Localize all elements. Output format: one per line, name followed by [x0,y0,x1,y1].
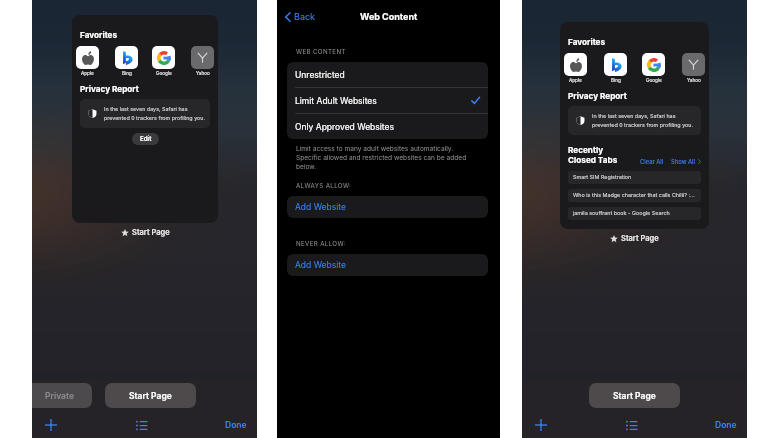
staticText: Favorites [568,37,606,47]
staticText: jamila souffrant book - Google Search [573,210,670,217]
button[interactable]: Limit Adult Websites [287,88,488,113]
staticText: Apple [81,71,94,77]
button[interactable]: Google [642,53,665,84]
button[interactable]: Smart SIM Registration [568,171,701,184]
staticText: Favorites [80,30,118,40]
staticText: Recently Closed Tabs [568,145,618,165]
staticText: Add Website [295,202,346,212]
staticText: In the last seven days, Safari has preve… [592,113,701,128]
button[interactable]: Favorites [560,22,709,229]
staticText: Bing [122,71,132,77]
staticText: Back [294,11,316,22]
button[interactable]: Back [285,11,316,22]
staticText: NEVER ALLOW: [296,240,346,248]
staticText: Limit access to many adult websites auto… [296,145,470,170]
staticText: ALWAYS ALLOW: [296,182,352,190]
button[interactable]: Unrestricted [287,62,488,87]
button[interactable]: Tab Overview [130,414,152,436]
staticText: Only Approved Websites [295,122,395,132]
button[interactable]: Who is this Madge character that calls C… [568,189,701,202]
button[interactable]: New Tab [40,414,62,436]
button[interactable]: Clear All [640,158,664,165]
button[interactable]: Bing [115,46,138,77]
button[interactable]: Tab Overview [620,414,642,436]
button[interactable]: Start Page [105,383,196,408]
staticText: Start Page [132,228,170,237]
staticText: In the last seven days, Safari has preve… [104,106,210,121]
button[interactable]: New Tab [530,414,552,436]
staticText: Private [45,391,74,401]
button[interactable]: Done [225,420,247,430]
staticText: Privacy Report [568,91,627,101]
staticText: Add Website [295,260,346,270]
button[interactable]: Done [715,420,737,430]
staticText: Done [715,420,737,430]
button[interactable]: Edit [132,133,159,145]
staticText: Yahoo [687,78,701,84]
staticText: Web Content [360,11,418,22]
staticText: Bing [611,78,621,84]
button[interactable]: Only Approved Websites [287,114,488,139]
staticText: Clear All [640,158,664,165]
button[interactable]: In the last seven days, Safari has preve… [568,106,701,135]
button[interactable]: Start Page [121,228,170,237]
button[interactable]: Yahoo [682,53,705,84]
button[interactable]: Yahoo [191,46,214,77]
button[interactable]: Bing [604,53,627,84]
staticText: WEB CONTENT [296,48,346,56]
staticText: Start Page [621,234,659,243]
button[interactable]: Favorites [72,15,218,223]
staticText: Edit [140,135,152,143]
staticText: Limit Adult Websites [295,96,377,106]
staticText: Done [225,420,247,430]
button[interactable]: Start Page [610,234,659,243]
button[interactable]: Add Website [287,254,488,276]
button[interactable]: Apple [564,53,587,84]
staticText: Show All [671,158,696,165]
staticText: Privacy Report [80,84,139,94]
button[interactable]: Add Website [287,196,488,218]
staticText: Yahoo [196,71,210,77]
staticText: Apple [569,78,582,84]
staticText: Google [646,78,662,84]
staticText: Who is this Madge character that calls C… [573,192,696,199]
button[interactable]: In the last seven days, Safari has preve… [80,99,210,128]
staticText: Smart SIM Registration [573,174,632,181]
button[interactable]: Google [152,46,175,77]
staticText: Start Page [613,391,656,401]
button[interactable]: Show All [671,158,701,165]
staticText: Unrestricted [295,70,345,80]
button[interactable]: Apple [76,46,99,77]
button[interactable]: jamila souffrant book - Google Search [568,207,701,220]
button[interactable]: Private [32,383,92,408]
button[interactable]: Start Page [589,383,680,408]
staticText: Google [156,71,172,77]
staticText: Start Page [129,391,172,401]
